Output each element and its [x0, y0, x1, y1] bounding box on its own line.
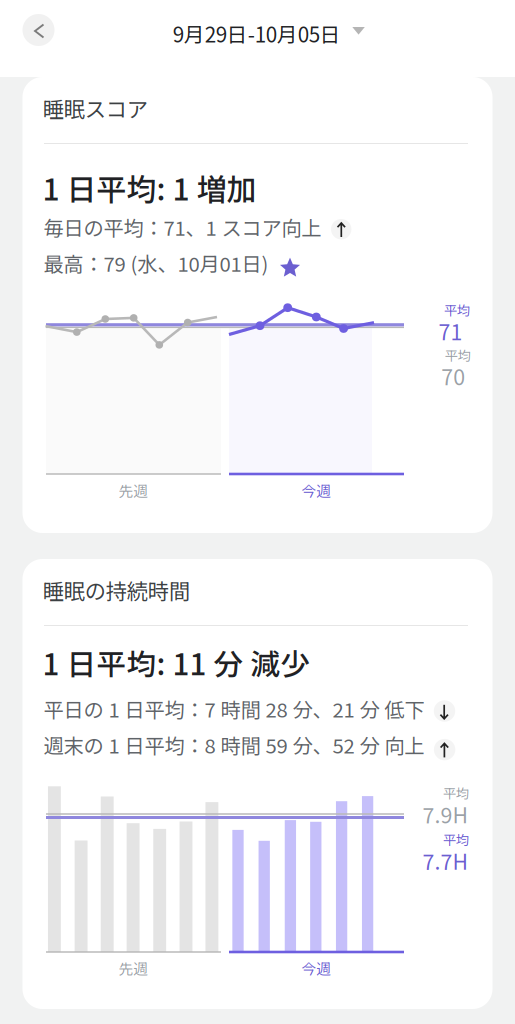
staticText: 9月29日-10月05日: [173, 18, 341, 48]
staticText: 先週: [118, 957, 148, 979]
staticText: 平均: [444, 300, 470, 319]
staticText: 睡眠の持続時間: [43, 575, 190, 605]
staticText: 平日の 1 日平均：7 時間 28 分、21 分 低下: [43, 694, 424, 723]
staticText: 1 日平均: 1 増加: [42, 166, 256, 209]
staticText: 7.9H: [422, 798, 468, 829]
staticText: 平均: [443, 829, 469, 849]
staticText: 睡眠スコア: [43, 93, 148, 123]
staticText: 71: [438, 315, 462, 346]
staticText: 先週: [118, 480, 148, 501]
staticText: 1 日平均: 11 分 減少: [42, 641, 310, 684]
staticText: 今週: [301, 480, 331, 501]
button[interactable]: Back: [22, 14, 54, 46]
staticText: 7.7H: [422, 845, 468, 876]
staticText: 最高：79 (水、10月01日): [43, 248, 268, 278]
staticText: 毎日の平均：71、1 スコア向上: [43, 212, 321, 241]
staticText: 週末の 1 日平均：8 時間 59 分、52 分 向上: [43, 730, 424, 759]
staticText: 平均: [445, 345, 471, 365]
staticText: 70: [441, 360, 465, 391]
staticText: 平均: [443, 783, 469, 802]
button[interactable]: 日付範囲を選択: [172, 11, 377, 55]
staticText: 今週: [301, 957, 331, 979]
